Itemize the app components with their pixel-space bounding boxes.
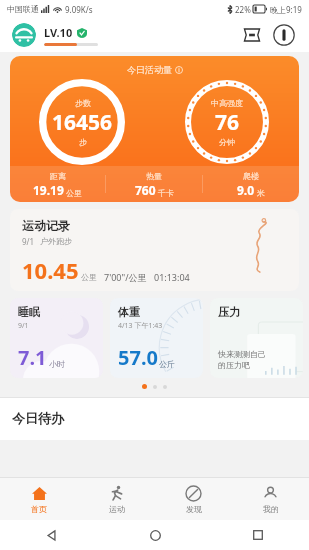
staticText: 千卡 (158, 188, 174, 198)
staticText: 76 (215, 108, 240, 137)
staticText: 小时 (49, 359, 65, 369)
staticText: 体重 (118, 305, 140, 319)
button[interactable]: 运动记录 (10, 209, 299, 291)
staticText: 9.0 (237, 182, 255, 198)
staticText: 公里 (66, 188, 82, 198)
button[interactable]: Device (271, 22, 297, 48)
staticText: 中高强度 (211, 98, 243, 108)
staticText: LV.10 (44, 25, 73, 40)
staticText: 爬楼 (243, 171, 259, 181)
button[interactable]: 首页 (0, 478, 78, 520)
button[interactable]: Home (142, 522, 168, 548)
staticText: 9/1 (18, 321, 29, 331)
staticText: 01:13:04 (154, 271, 190, 283)
staticText: 运动记录 (22, 218, 70, 233)
staticText: 10.45 (22, 255, 79, 285)
staticText: 19.19 (33, 182, 64, 198)
staticText: 今日待办 (12, 410, 64, 426)
button[interactable]: 运动 (78, 478, 155, 520)
staticText: 热量 (146, 171, 162, 181)
staticText: 压力 (218, 305, 240, 319)
button[interactable]: 压力 (210, 298, 303, 378)
staticText: 的压力吧 (218, 360, 250, 370)
button[interactable]: 今日活动量 (10, 56, 299, 202)
staticText: 22% (235, 4, 251, 15)
staticText: 今日活动量 (127, 64, 172, 75)
button[interactable]: 睡眠 (10, 298, 103, 378)
staticText: 9.09K/s (65, 4, 93, 15)
staticText: 9/1 (22, 236, 35, 247)
staticText: 步数 (75, 98, 91, 108)
button[interactable]: Recents (245, 522, 271, 548)
staticText: 睡眠 (18, 305, 40, 319)
staticText: 快来测测自己 (218, 349, 266, 359)
staticText: 首页 (31, 504, 47, 514)
button[interactable]: 体重 (110, 298, 203, 378)
staticText: 分钟 (219, 137, 235, 147)
staticText: 16456 (52, 108, 113, 137)
staticText: 运动 (109, 504, 125, 514)
staticText: 7'00"/公里 (104, 271, 147, 283)
staticText: 晚上9:19 (270, 4, 302, 15)
staticText: 距离 (50, 171, 66, 181)
button[interactable]: Back (39, 522, 65, 548)
staticText: 7.1 (18, 344, 47, 371)
button[interactable]: 我的 (232, 478, 309, 520)
button[interactable]: 距离 (10, 171, 105, 198)
staticText: 760 (135, 182, 156, 198)
staticText: 公斤 (159, 359, 175, 369)
staticText: 户外跑步 (40, 236, 72, 246)
staticText: 步 (79, 137, 87, 147)
button[interactable]: 爬楼 (203, 171, 299, 198)
staticText: 中国联通 (7, 4, 39, 14)
staticText: 发现 (186, 504, 202, 514)
staticText: 公里 (81, 272, 97, 282)
staticText: 4/13 下午1:43 (118, 321, 163, 331)
button[interactable]: 热量 (106, 171, 202, 198)
staticText: 57.0 (118, 344, 158, 371)
staticText: 我的 (263, 504, 279, 514)
button[interactable]: Coupons (239, 22, 265, 48)
button[interactable]: LV.10 (44, 25, 98, 46)
button[interactable]: Profile avatar (12, 23, 36, 47)
staticText: 米 (257, 188, 265, 198)
button[interactable]: 发现 (155, 478, 232, 520)
